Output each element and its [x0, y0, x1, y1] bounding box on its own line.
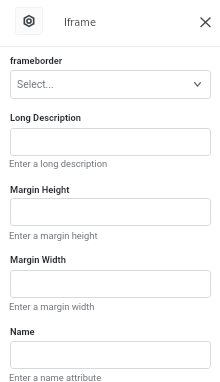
button[interactable] — [10, 341, 211, 369]
staticText: Iframe — [64, 17, 96, 28]
staticText: Name — [10, 326, 35, 337]
staticText: Long Description — [10, 112, 81, 123]
button[interactable]: Component settings — [15, 7, 43, 35]
staticText: Enter a margin height — [9, 230, 98, 241]
button[interactable] — [10, 270, 211, 298]
staticText: Select... — [17, 78, 54, 90]
staticText: Enter a name attribute — [9, 372, 102, 382]
staticText: Margin Width — [10, 254, 66, 265]
button[interactable] — [10, 198, 211, 226]
button[interactable]: Select... — [10, 70, 211, 99]
button[interactable]: Close — [193, 10, 217, 34]
staticText: Enter a long description — [9, 158, 108, 169]
staticText: Margin Height — [10, 184, 70, 195]
staticText: Enter a margin width — [9, 301, 95, 312]
button[interactable]: Iframe — [55, 8, 119, 36]
staticText: frameborder — [10, 55, 63, 66]
button[interactable] — [10, 128, 211, 156]
